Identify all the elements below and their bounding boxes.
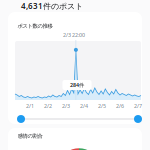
staticText: 284件	[70, 81, 84, 89]
staticText: 2/3 22:00	[63, 31, 85, 39]
staticText: ポスト数の推移	[17, 23, 52, 29]
staticText: 2/7	[134, 102, 142, 110]
staticText: 2/4	[80, 102, 88, 110]
staticText: 4,631件のポスト	[21, 1, 83, 11]
staticText: 2/6	[116, 102, 124, 110]
staticText: 2/3	[62, 102, 70, 110]
staticText: 2/5	[98, 102, 106, 110]
staticText: 感情の割合	[17, 133, 42, 139]
staticText: 2/1	[26, 102, 34, 110]
staticText: 2/2	[44, 102, 52, 110]
